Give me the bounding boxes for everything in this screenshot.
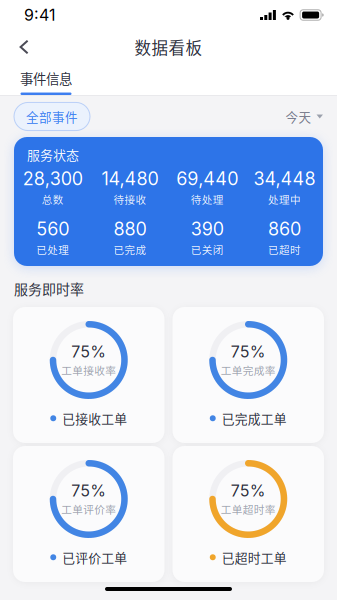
staticText: 工单完成率 — [221, 362, 276, 378]
button[interactable]: 今天 — [285, 101, 323, 131]
staticText: 全部事件 — [26, 107, 78, 125]
staticText: 已超时工单 — [222, 548, 287, 566]
staticText: 待处理 — [191, 192, 224, 207]
button[interactable]: 75% — [13, 307, 164, 443]
staticText: 75% — [231, 342, 266, 361]
staticText: 880 — [113, 218, 146, 240]
staticText: 已评价工单 — [62, 548, 127, 566]
staticText: 已关闭 — [191, 242, 224, 257]
staticText: 处理中 — [268, 192, 301, 207]
button[interactable]: 75% — [172, 446, 324, 582]
staticText: 14,480 — [101, 168, 158, 190]
staticText: 事件信息 — [20, 68, 72, 88]
staticText: 已接收工单 — [62, 409, 127, 427]
staticText: 今天 — [285, 107, 311, 125]
button[interactable]: Back — [7, 32, 41, 62]
staticText: 390 — [191, 218, 224, 240]
staticText: 75% — [71, 481, 106, 500]
staticText: 75% — [71, 342, 106, 361]
staticText: 75% — [231, 481, 266, 500]
staticText: 服务即时率 — [14, 278, 84, 299]
staticText: 860 — [268, 218, 301, 240]
staticText: 9:41 — [24, 5, 56, 25]
staticText: 数据看板 — [134, 35, 202, 59]
staticText: 工单评价率 — [61, 501, 116, 517]
staticText: 69,440 — [176, 168, 238, 190]
staticText: 已完成 — [113, 242, 146, 257]
staticText: 服务状态 — [27, 145, 79, 164]
staticText: 34,448 — [253, 168, 315, 190]
staticText: 560 — [36, 218, 69, 240]
staticText: 已完成工单 — [222, 409, 287, 427]
button[interactable]: 事件信息 — [20, 64, 72, 95]
staticText: 已超时 — [268, 242, 301, 257]
button[interactable]: 75% — [172, 307, 324, 443]
staticText: 总数 — [42, 192, 64, 207]
staticText: 待接收 — [113, 192, 146, 207]
staticText: 已处理 — [36, 242, 69, 257]
staticText: 工单超时率 — [221, 501, 276, 517]
button[interactable]: 75% — [13, 446, 164, 582]
button[interactable]: 全部事件 — [14, 102, 90, 130]
staticText: 28,300 — [23, 168, 83, 190]
staticText: 工单接收率 — [61, 362, 116, 378]
